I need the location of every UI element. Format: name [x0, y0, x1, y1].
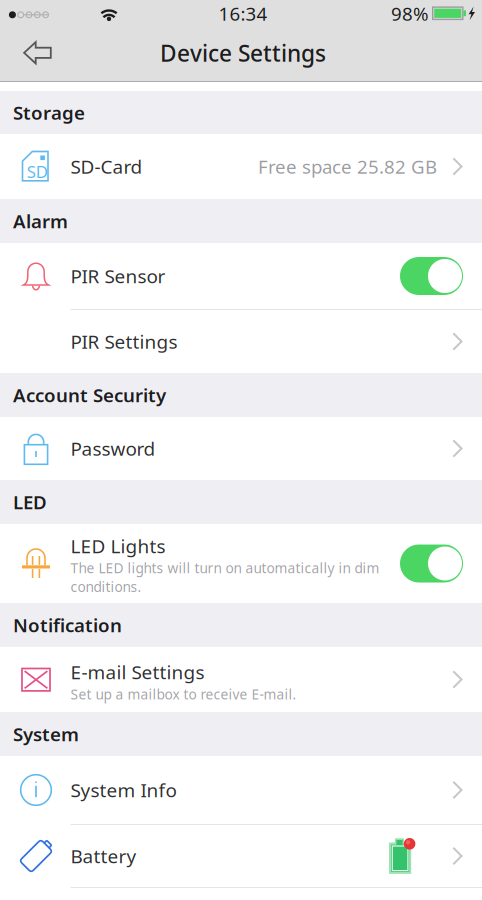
staticText: Device Settings [160, 38, 326, 68]
staticText: Free space 25.82 GB [258, 154, 437, 179]
staticText: SD [27, 160, 48, 183]
staticText: LED [13, 490, 47, 514]
staticText: E-mail Settings [70, 659, 204, 685]
staticText: System Info [70, 777, 176, 803]
button[interactable]: Battery [0, 825, 482, 887]
staticText: PIR Sensor [70, 263, 165, 289]
staticText: System [13, 722, 79, 746]
staticText: Account Security [13, 383, 166, 407]
staticText: Alarm [13, 209, 68, 233]
button[interactable]: System Info [0, 756, 482, 824]
staticText: Battery [70, 843, 136, 869]
button[interactable]: PIR Settings [0, 310, 482, 373]
button[interactable]: SD [0, 134, 482, 199]
staticText: 98% [391, 1, 429, 26]
staticText: PIR Settings [70, 329, 177, 354]
staticText: Set up a mailbox to receive E-mail. [70, 685, 296, 703]
button[interactable]: PIR Sensor [0, 243, 482, 309]
staticText: Notification [13, 613, 122, 637]
button[interactable]: LED Lights [0, 524, 482, 603]
staticText: 16:34 [218, 1, 267, 26]
staticText: LED Lights [70, 533, 165, 559]
button[interactable]: Back [0, 35, 66, 81]
button[interactable]: E-mail Settings [0, 647, 482, 712]
staticText: SD-Card [70, 154, 142, 179]
staticText: Storage [13, 100, 85, 125]
button[interactable]: Password [0, 417, 482, 480]
staticText: The LED lights will turn on automaticall… [70, 559, 379, 596]
staticText: Password [70, 436, 155, 461]
